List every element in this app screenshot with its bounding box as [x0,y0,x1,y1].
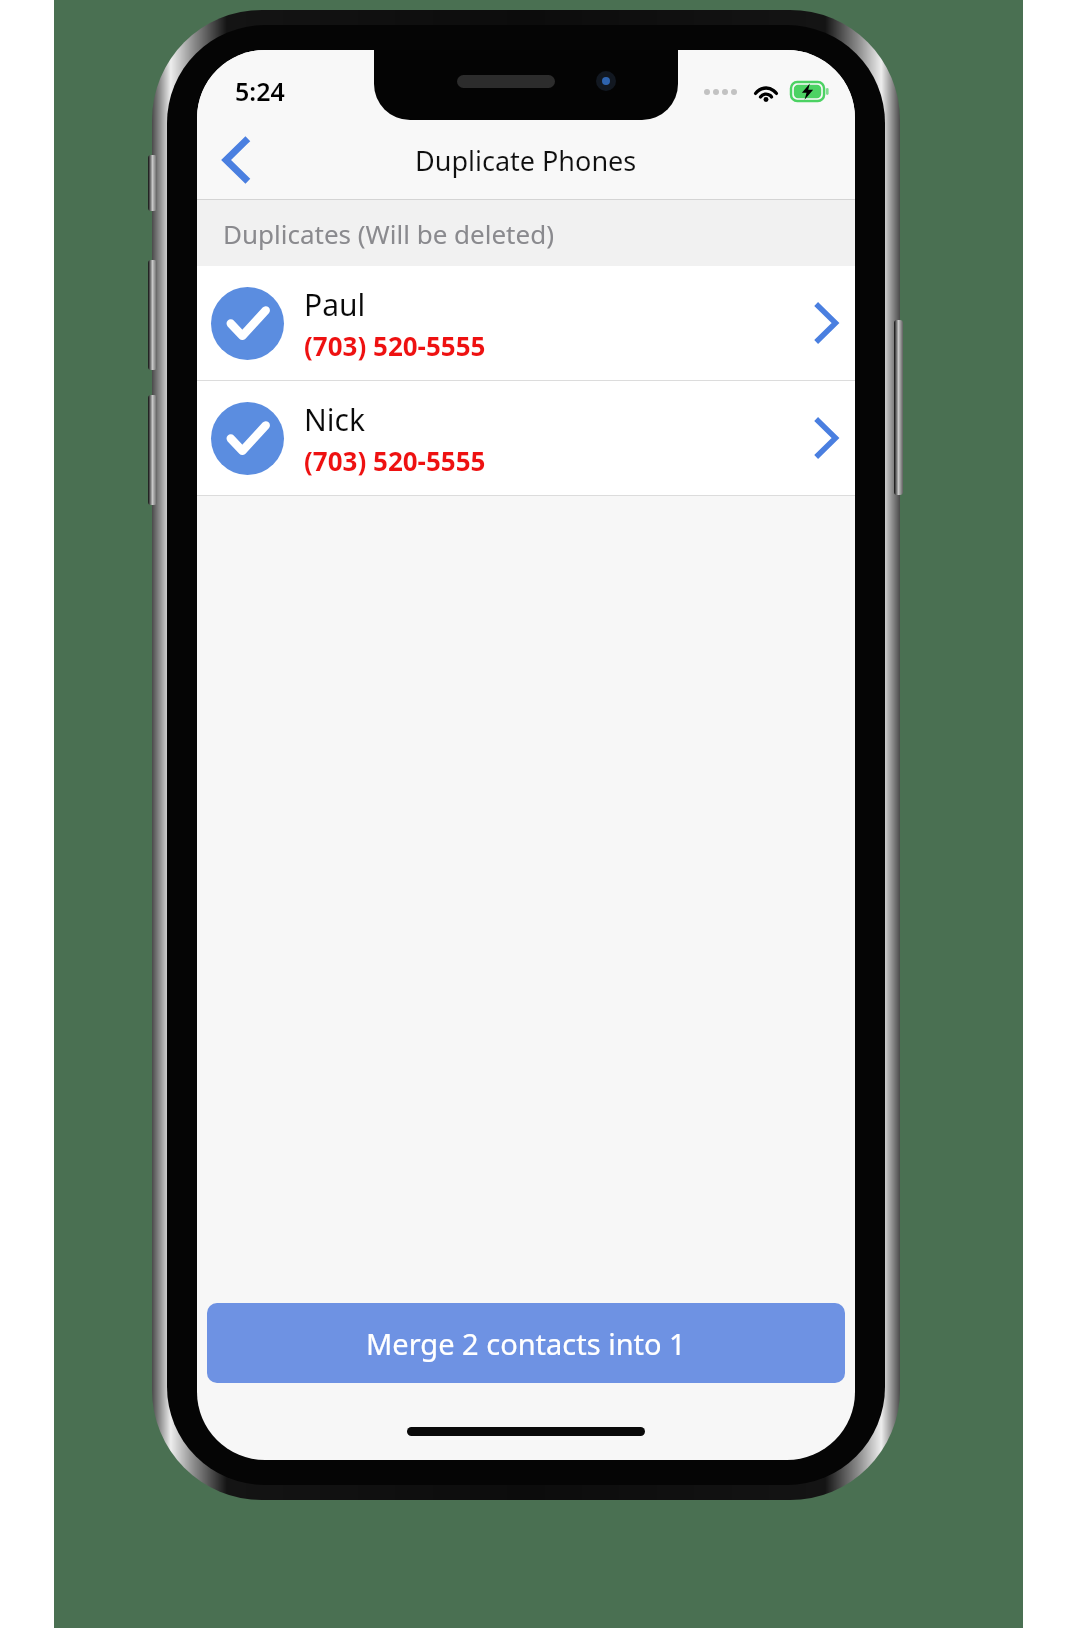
staticText: Nick [304,399,365,440]
button[interactable]: Back [197,120,285,200]
button[interactable]: Nick [197,381,855,495]
button[interactable]: Merge 2 contacts into 1 [207,1303,845,1383]
staticText: (703) 520-5555 [304,443,486,478]
button[interactable]: Paul [197,266,855,380]
staticText: (703) 520-5555 [304,328,486,363]
staticText: Duplicate Phones [415,142,637,179]
staticText: Paul [304,284,366,325]
staticText: 5:24 [235,74,285,108]
staticText: Merge 2 contacts into 1 [366,1324,686,1363]
staticText: Duplicates (Will be deleted) [223,216,554,251]
